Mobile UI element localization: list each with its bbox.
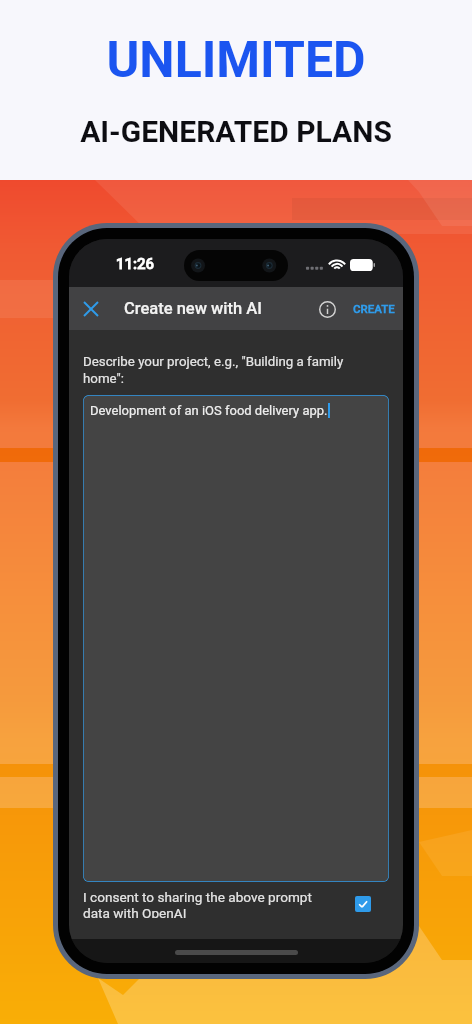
staticText: 11:26 bbox=[116, 255, 155, 273]
button[interactable]: CREATE bbox=[345, 287, 403, 330]
button[interactable]: I consent to sharing the above prompt da… bbox=[83, 889, 389, 918]
button[interactable]: Close bbox=[69, 287, 112, 330]
staticText: Create new with AI bbox=[124, 299, 262, 318]
staticText: CREATE bbox=[353, 302, 395, 315]
staticText: AI-GENERATED PLANS bbox=[80, 114, 392, 149]
staticText: Describe your project, e.g., "Building a… bbox=[83, 354, 351, 386]
button[interactable]: Info bbox=[309, 291, 345, 327]
staticText: Development of an iOS food delivery app. bbox=[90, 403, 328, 418]
staticText: I consent to sharing the above prompt da… bbox=[83, 889, 327, 918]
staticText: UNLIMITED bbox=[106, 31, 366, 90]
